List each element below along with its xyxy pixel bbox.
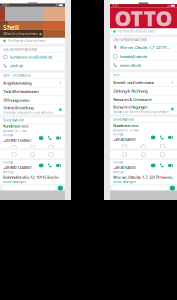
button[interactable]: Video call [167, 134, 174, 141]
staticText: shell.de [10, 63, 23, 68]
staticText: Kontakt [3, 133, 13, 137]
button[interactable]: Tank-Werbeaktionen [0, 87, 65, 96]
button[interactable]: Chats [120, 144, 129, 150]
staticText: Antwort in 5 Min. [3, 129, 28, 133]
staticText: Produkte reservieren und abholen [3, 111, 53, 114]
staticText: 9:41 [112, 4, 119, 7]
button[interactable]: Benachrichtigungen [110, 104, 177, 114]
button[interactable]: Status [28, 152, 37, 158]
staticText: GESCHÄFTSINFORMATIONEN [3, 48, 37, 51]
staticText: Adresse [113, 170, 124, 174]
button[interactable]: Online-Bestellung [0, 105, 65, 115]
button[interactable]: shell.de [0, 61, 65, 70]
staticText: Kontakt [3, 161, 13, 164]
staticText: Bestell- und Lieferstatus [113, 80, 154, 85]
staticText: Benachrichtigungen [113, 104, 147, 110]
button[interactable]: Message [150, 134, 156, 141]
button[interactable]: Retouren & Umtausch [110, 95, 177, 104]
button[interactable]: Status [28, 144, 37, 150]
staticText: Werner-Otto-Str. 1-7, 22179 Hamburg [120, 45, 171, 50]
button[interactable]: Kundenservice [0, 124, 65, 133]
button[interactable]: Werner-Otto-Str. 1-7, 22179 Hamburg [110, 43, 177, 52]
staticText: Zahlung & Rechnung [113, 88, 147, 94]
button[interactable]: Call [47, 162, 53, 169]
staticText: Kundenservice [113, 123, 138, 128]
button[interactable]: Message [38, 162, 44, 169]
button[interactable]: Calls [158, 152, 167, 158]
staticText: GESCHÄFTSINFORMATIONEN [113, 38, 147, 42]
button[interactable]: Call [47, 135, 53, 141]
staticText: Angebotskatalog [3, 80, 31, 86]
staticText: Werner-Otto-Str. 1-7, 22179 Hamburg [113, 175, 174, 180]
button[interactable]: Chats [9, 152, 18, 158]
button[interactable]: Chats [120, 152, 129, 158]
staticText: Retouren & Umtausch [113, 97, 151, 102]
button[interactable]: Calls [46, 144, 55, 150]
staticText: Direkt Nachricht [3, 119, 24, 122]
button[interactable]: Message [150, 162, 156, 169]
button[interactable]: Kundenservice [110, 123, 177, 132]
staticText: Direkt Nachricht [113, 118, 134, 121]
button[interactable]: Chats [9, 144, 18, 150]
staticText: Verifiziertes Unternehmen [118, 30, 156, 33]
staticText: Offizielles Unternehmen [3, 32, 38, 36]
staticText: Updates zu deiner Bestellung erhalten [113, 110, 169, 114]
button[interactable]: Bestell- und Lieferstatus [110, 78, 177, 86]
staticText: Verifiziertes Unternehmen [8, 39, 46, 43]
staticText: SHOP [113, 73, 120, 77]
staticText: Kontakt [113, 161, 123, 164]
button[interactable]: Video call [55, 162, 62, 169]
staticText: +49 40 64610 [113, 165, 135, 170]
button[interactable]: Video call [167, 162, 174, 169]
staticText: 9:41 [2, 3, 9, 7]
staticText: Bahnhofstraße 12, 10115 Berlin [3, 175, 58, 180]
staticText: Kundenservice [3, 123, 28, 129]
staticText: Route anzeigen [3, 180, 26, 184]
button[interactable]: Angebotskatalog [0, 79, 65, 87]
button[interactable]: Calls [158, 144, 167, 150]
button[interactable]: Call [159, 134, 165, 141]
staticText: SHOP · AUTOWÄSCHE [3, 74, 30, 77]
button[interactable]: Öffnungszeiten [0, 96, 65, 104]
staticText: kontakt@otto.de [120, 54, 147, 59]
button[interactable]: Zahlung & Rechnung [110, 87, 177, 95]
staticText: Kontakt [113, 133, 123, 136]
staticText: Shell [3, 23, 19, 32]
button[interactable]: www.otto.de [110, 61, 177, 69]
button[interactable]: Call [159, 162, 165, 169]
staticText: Antwort in 10 Min. [113, 129, 140, 132]
button[interactable]: Video call [55, 135, 62, 141]
staticText: kundenservice@shell.de [10, 54, 52, 60]
button[interactable]: kundenservice@shell.de [0, 53, 65, 61]
button[interactable]: Status [139, 144, 148, 150]
button[interactable]: Message [38, 135, 44, 141]
button[interactable]: Calls [46, 152, 55, 158]
staticText: Route anzeigen [113, 180, 136, 184]
staticText: +49 800 1234567 [3, 165, 31, 170]
button[interactable]: Status [139, 152, 148, 158]
staticText: Adresse [3, 170, 14, 174]
button[interactable]: Verifiziertes Unternehmen [110, 28, 177, 34]
button[interactable]: kontakt@otto.de [110, 52, 177, 60]
staticText: +49 800 1234567 [3, 137, 31, 143]
button[interactable]: Verifiziertes Unternehmen [0, 38, 65, 44]
staticText: Online-Bestellung [3, 105, 33, 110]
staticText: www.otto.de [120, 62, 141, 68]
staticText: Öffnungszeiten [3, 97, 29, 103]
staticText: OTTO [114, 4, 172, 32]
staticText: LTE [167, 4, 170, 7]
staticText: +49 40 64610 [113, 137, 135, 142]
staticText: LTE [55, 3, 58, 7]
staticText: Tank-Werbeaktionen [3, 89, 38, 94]
